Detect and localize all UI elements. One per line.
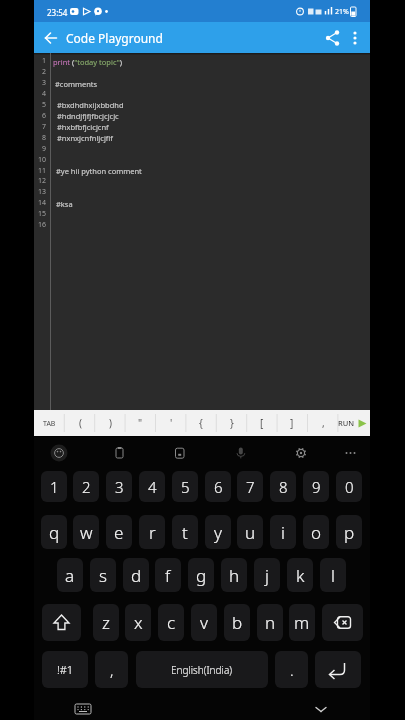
button[interactable] (40, 27, 62, 49)
button[interactable] (42, 604, 81, 641)
button[interactable]: x (125, 604, 151, 641)
button[interactable]: l (320, 558, 346, 592)
button[interactable]: 3 (106, 471, 132, 502)
staticText: 6 (214, 477, 223, 497)
staticText: 13 (38, 187, 47, 197)
button[interactable]: e (106, 515, 132, 549)
button[interactable]: 5 (172, 471, 198, 502)
staticText: h (229, 564, 240, 587)
staticText: #ye hii python comment (56, 166, 142, 176)
staticText: 1 (50, 477, 59, 497)
button[interactable]: d (123, 558, 149, 592)
staticText: g (196, 564, 207, 587)
button[interactable]: k (287, 558, 313, 592)
staticText: y (214, 521, 222, 544)
staticText: e (114, 521, 124, 544)
button[interactable]: h (221, 558, 247, 592)
staticText: b (232, 611, 243, 634)
button[interactable]: n (257, 604, 283, 641)
button[interactable]: , (312, 410, 334, 436)
button[interactable]: English(India) (136, 651, 268, 688)
button[interactable]: ' (160, 410, 182, 436)
staticText: 7 (246, 477, 255, 497)
button[interactable]: q (41, 515, 67, 549)
button[interactable]: 1 (41, 471, 67, 502)
button[interactable]: ( (69, 410, 91, 436)
button[interactable]: m (289, 604, 315, 641)
button[interactable] (315, 651, 361, 688)
button[interactable] (306, 699, 336, 720)
staticText: 14 (38, 198, 47, 208)
staticText: #hdndjfjfjfbcjcjcjc (57, 111, 119, 121)
button[interactable]: } (221, 410, 243, 436)
staticText: t (182, 521, 188, 544)
staticText: 9 (42, 144, 47, 154)
staticText: 4 (42, 89, 47, 99)
button[interactable]: 6 (205, 471, 231, 502)
staticText: #ksa (56, 199, 73, 209)
staticText: x (134, 611, 143, 634)
button[interactable]: . (275, 651, 308, 688)
button[interactable]: , (95, 651, 128, 688)
button[interactable]: 8 (270, 471, 296, 502)
staticText: 3 (42, 78, 47, 88)
button[interactable]: { (190, 410, 212, 436)
staticText: f (165, 564, 171, 587)
staticText: !#1 (57, 662, 74, 677)
staticText: 4 (148, 477, 157, 497)
staticText: l (331, 564, 335, 587)
staticText: r (149, 521, 156, 544)
staticText: ) (109, 416, 112, 430)
staticText: 21% (335, 7, 349, 17)
button[interactable]: 4 (139, 471, 165, 502)
staticText: 9 (312, 477, 321, 497)
button[interactable]: 0 (336, 471, 362, 502)
button[interactable]: g (188, 558, 214, 592)
button[interactable]: j (254, 558, 280, 592)
button[interactable]: w (73, 515, 99, 549)
staticText: 0 (345, 477, 354, 497)
button[interactable]: " (129, 410, 151, 436)
button[interactable]: p (336, 515, 362, 549)
staticText: s (99, 564, 107, 587)
button[interactable]: ) (99, 410, 121, 436)
staticText: , (322, 416, 325, 430)
button[interactable]: z (93, 604, 119, 641)
staticText: v (200, 611, 208, 634)
staticText: 16 (38, 220, 47, 230)
staticText: ] (290, 416, 294, 430)
button[interactable]: 9 (303, 471, 329, 502)
staticText: u (245, 521, 256, 544)
button[interactable] (345, 27, 365, 49)
button[interactable]: b (224, 604, 250, 641)
button[interactable]: [ (251, 410, 273, 436)
button[interactable]: f (155, 558, 181, 592)
button[interactable]: o (303, 515, 329, 549)
button[interactable] (322, 604, 363, 641)
button[interactable]: RUN (334, 410, 370, 436)
button[interactable]: u (237, 515, 263, 549)
button[interactable]: 7 (237, 471, 263, 502)
button[interactable]: r (139, 515, 165, 549)
staticText: m (294, 611, 310, 634)
button[interactable]: i (270, 515, 296, 549)
button[interactable]: ] (281, 410, 303, 436)
staticText: 8 (42, 133, 47, 143)
staticText: 10 (38, 155, 47, 165)
button[interactable] (68, 699, 98, 720)
button[interactable]: v (191, 604, 217, 641)
staticText: d (131, 564, 142, 587)
staticText: TAB (43, 419, 56, 429)
button[interactable] (322, 27, 344, 49)
staticText: print ("today topic") (53, 57, 122, 67)
button[interactable]: a (57, 558, 83, 592)
button[interactable]: 2 (73, 471, 99, 502)
button[interactable]: c (158, 604, 184, 641)
staticText: " (138, 416, 143, 430)
button[interactable]: y (205, 515, 231, 549)
button[interactable]: s (90, 558, 116, 592)
button[interactable]: t (172, 515, 198, 549)
button[interactable]: !#1 (42, 651, 88, 688)
staticText: k (296, 564, 305, 587)
staticText: } (230, 416, 234, 430)
